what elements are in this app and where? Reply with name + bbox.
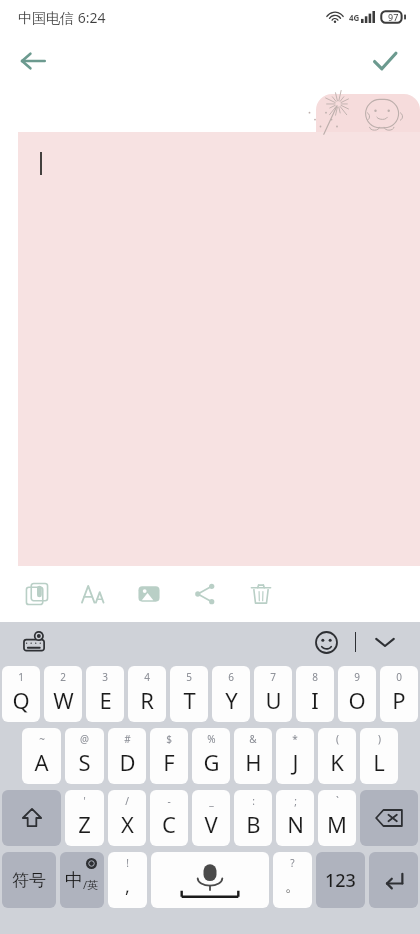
button[interactable]: 中 [60,852,104,908]
button[interactable]: _ [192,790,230,846]
button[interactable]: ( [318,728,356,784]
staticText: / [125,794,129,808]
staticText: X [121,809,134,839]
staticText: O [348,685,366,715]
button[interactable]: Enter [369,852,418,908]
button[interactable]: * [276,728,314,784]
staticText: C [162,809,176,839]
button[interactable]: ! [108,852,147,908]
staticText: U [265,685,282,715]
button[interactable]: Shift [2,790,61,846]
staticText: B [246,809,261,839]
staticText: 。 [285,877,300,896]
staticText: F [163,747,175,777]
staticText: W [53,685,74,715]
button[interactable]: 5 [170,666,208,722]
button[interactable]: Hide keyboard [368,625,402,659]
button[interactable]: : [234,790,272,846]
staticText: P [392,685,406,715]
staticText: /英 [83,877,99,892]
staticText: 6 [228,670,234,684]
staticText: 2 [60,670,66,684]
staticText: ~ [39,732,45,746]
staticText: ; [294,794,297,808]
staticText: - [167,794,171,808]
staticText: 中 [65,869,83,892]
staticText: ' [83,794,86,808]
staticText: % [207,732,216,746]
button[interactable]: ` [318,790,356,846]
button[interactable]: ' [65,790,104,846]
button[interactable]: 7 [254,666,292,722]
staticText: 123 [325,868,356,893]
button[interactable]: 123 [316,852,365,908]
staticText: _ [209,794,214,808]
staticText: ` [336,794,339,808]
staticText: & [249,732,257,746]
staticText: # [124,732,131,746]
button[interactable]: & [234,728,272,784]
staticText: L [373,747,385,777]
staticText: M [327,809,347,839]
staticText: $ [166,732,172,746]
button[interactable]: 8 [296,666,334,722]
staticText: ) [378,732,381,746]
staticText: A [34,747,49,777]
button[interactable]: ? [273,852,312,908]
staticText: V [204,809,218,839]
staticText: 5 [186,670,192,684]
staticText: J [292,747,299,777]
button[interactable]: Text format [74,575,112,613]
button[interactable]: % [192,728,230,784]
button[interactable]: Emoji [309,625,343,659]
staticText: 9 [354,670,360,684]
button[interactable]: Share [186,575,224,613]
staticText: 1 [18,670,24,684]
button[interactable]: Back [10,38,56,84]
button[interactable]: $ [150,728,188,784]
button[interactable]: ; [276,790,314,846]
button[interactable]: @ [65,728,104,784]
button[interactable]: # [108,728,146,784]
staticText: 3 [102,670,108,684]
staticText: 4 [144,670,150,684]
button[interactable]: 1 [2,666,40,722]
staticText: Q [12,685,30,715]
staticText: I [311,685,319,715]
button[interactable]: Backspace [360,790,418,846]
staticText: 中国电信 6:24 [18,8,106,27]
staticText: 7 [270,670,276,684]
staticText: E [99,685,112,715]
button[interactable]: 2 [44,666,82,722]
button[interactable]: Switch input method [18,625,52,659]
staticText: ( [336,732,339,746]
button[interactable]: / [108,790,146,846]
button[interactable]: 3 [86,666,124,722]
staticText: 97 [388,11,399,23]
button[interactable]: ~ [22,728,61,784]
staticText: 4G [349,12,360,23]
button[interactable]: 符号 [2,852,56,908]
button[interactable]: ) [360,728,398,784]
staticText: N [287,809,304,839]
button[interactable]: 4 [128,666,166,722]
button[interactable]: 6 [212,666,250,722]
staticText: D [119,747,136,777]
staticText: Z [78,809,91,839]
staticText: 符号 [12,870,46,891]
button[interactable]: 0 [380,666,418,722]
staticText: 0 [396,670,402,684]
button[interactable]: - [150,790,188,846]
button[interactable]: Attach [18,575,56,613]
staticText: * [292,732,298,746]
button[interactable]: 9 [338,666,376,722]
button[interactable]: Save [362,38,408,84]
button[interactable]: Space [151,852,269,908]
staticText: Y [225,685,238,715]
staticText: @ [80,732,89,746]
staticText: 8 [312,670,318,684]
button[interactable]: Insert image [130,575,168,613]
staticText: , [125,874,130,899]
button[interactable]: Delete [242,575,280,613]
